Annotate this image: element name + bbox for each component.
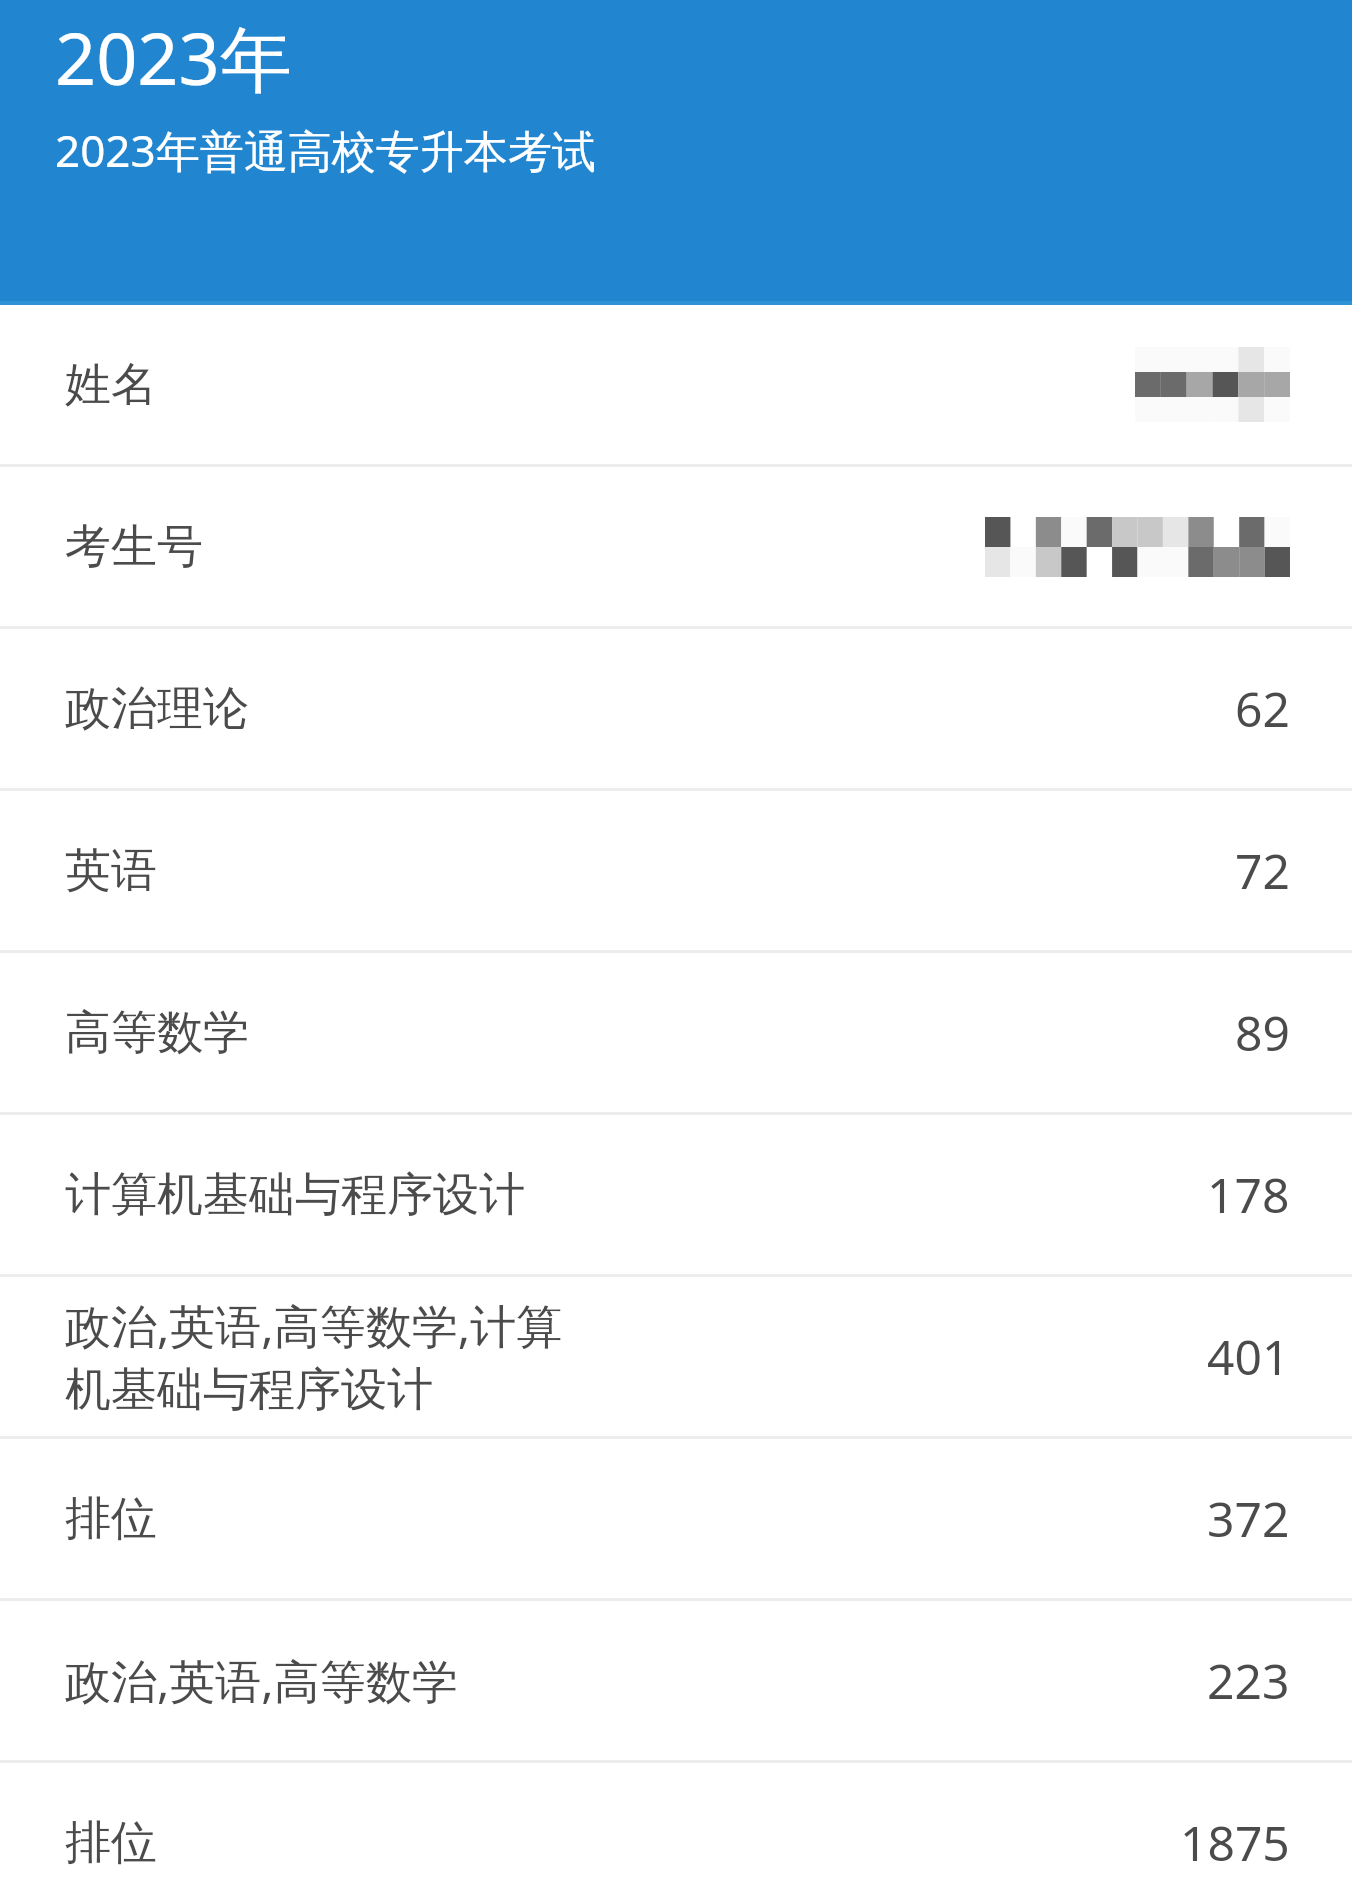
button[interactable]: 姓名 bbox=[0, 305, 1352, 464]
staticText: 372 bbox=[1207, 1486, 1290, 1551]
staticText: 62 bbox=[1235, 676, 1290, 741]
staticText: 1875 bbox=[1180, 1810, 1290, 1875]
button[interactable]: 政治,英语,高等数学,计算 bbox=[0, 1277, 1352, 1436]
staticText: 89 bbox=[1235, 1000, 1290, 1065]
other: 考生号已隐藏 bbox=[985, 517, 1290, 577]
staticText: 英语 bbox=[65, 842, 157, 900]
staticText: 2023年普通高校专升本考试 bbox=[55, 120, 596, 180]
staticText: 政治,英语,高等数学 bbox=[65, 1649, 458, 1712]
button[interactable]: 高等数学 bbox=[0, 953, 1352, 1112]
staticText: 排位 bbox=[65, 1814, 157, 1872]
button[interactable]: 政治理论 bbox=[0, 629, 1352, 788]
button[interactable]: 排位 bbox=[0, 1439, 1352, 1598]
other: 姓名已隐藏 bbox=[1135, 347, 1290, 422]
staticText: 政治理论 bbox=[65, 680, 249, 738]
staticText: 2023年 bbox=[55, 8, 292, 106]
staticText: 政治,英语,高等数学,计算 bbox=[65, 1294, 562, 1357]
staticText: 178 bbox=[1207, 1162, 1290, 1227]
button[interactable]: 政治,英语,高等数学 bbox=[0, 1601, 1352, 1760]
button[interactable]: 英语 bbox=[0, 791, 1352, 950]
staticText: 机基础与程序设计 bbox=[65, 1361, 433, 1419]
staticText: 高等数学 bbox=[65, 1004, 249, 1062]
staticText: 姓名 bbox=[65, 356, 157, 414]
staticText: 223 bbox=[1207, 1648, 1290, 1713]
button[interactable]: 计算机基础与程序设计 bbox=[0, 1115, 1352, 1274]
staticText: 72 bbox=[1235, 838, 1290, 903]
staticText: 401 bbox=[1207, 1324, 1290, 1389]
staticText: 考生号 bbox=[65, 518, 203, 576]
staticText: 排位 bbox=[65, 1490, 157, 1548]
staticText: 计算机基础与程序设计 bbox=[65, 1166, 525, 1224]
button[interactable]: 考生号 bbox=[0, 467, 1352, 626]
button[interactable]: 排位 bbox=[0, 1763, 1352, 1894]
